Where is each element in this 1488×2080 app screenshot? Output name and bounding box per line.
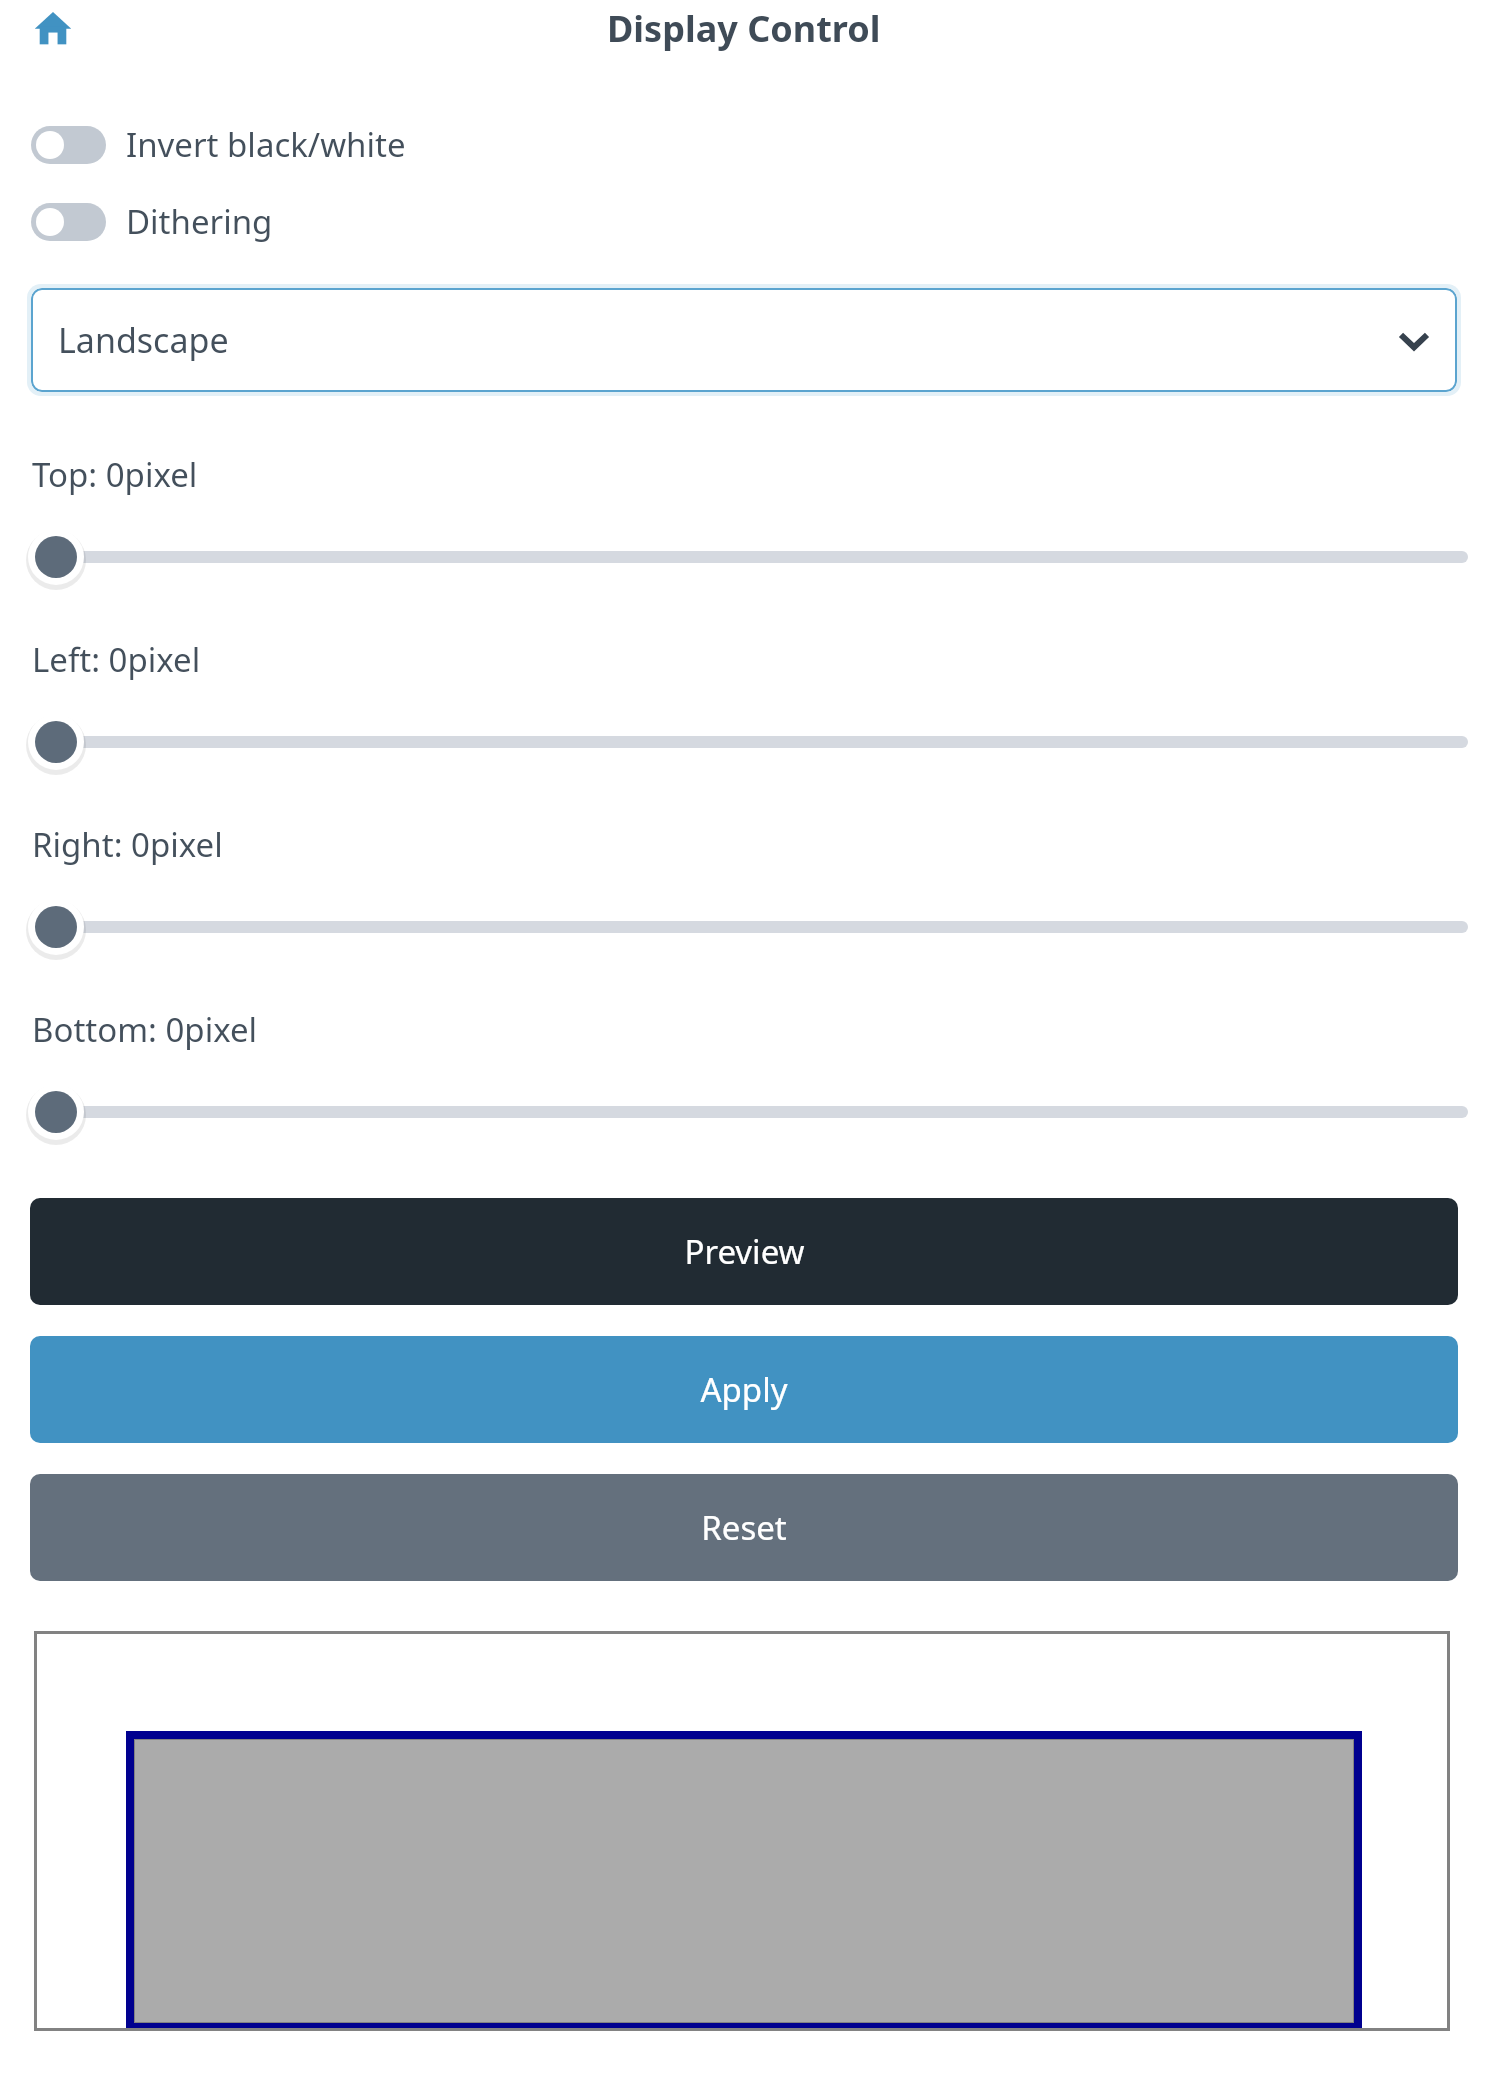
staticText: Right: 0pixel: [32, 822, 223, 867]
staticText: Apply: [700, 1367, 788, 1412]
button[interactable]: Invert black/white: [0, 122, 1488, 167]
staticText: Display Control: [607, 4, 881, 53]
button[interactable]: Preview: [30, 1198, 1458, 1305]
staticText: Left: 0pixel: [32, 637, 201, 682]
button[interactable]: [0, 531, 1488, 583]
button[interactable]: Home: [30, 5, 76, 51]
button[interactable]: Apply: [30, 1336, 1458, 1443]
button[interactable]: Landscape: [31, 288, 1457, 392]
staticText: Preview: [684, 1229, 805, 1274]
button[interactable]: Reset: [30, 1474, 1458, 1581]
staticText: Invert black/white: [126, 122, 406, 167]
button[interactable]: Dithering: [0, 199, 1488, 244]
button[interactable]: [0, 901, 1488, 953]
staticText: Dithering: [126, 199, 273, 244]
staticText: Landscape: [58, 317, 229, 363]
button[interactable]: [0, 1086, 1488, 1138]
staticText: Top: 0pixel: [32, 452, 198, 497]
staticText: Reset: [701, 1505, 787, 1550]
staticText: Bottom: 0pixel: [32, 1007, 258, 1052]
button[interactable]: [0, 716, 1488, 768]
